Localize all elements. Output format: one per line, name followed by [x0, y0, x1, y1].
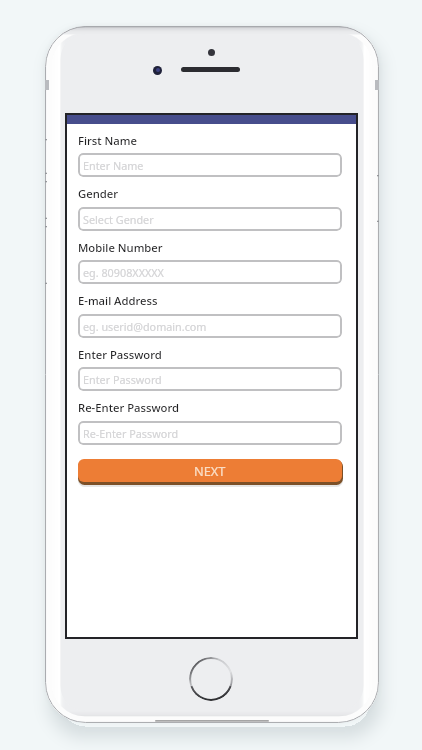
- button[interactable]: eg. 80908XXXXX: [78, 260, 342, 284]
- staticText: E-mail Address: [78, 293, 158, 308]
- staticText: Select Gender: [83, 212, 154, 227]
- staticText: Enter Password: [78, 347, 162, 362]
- button[interactable]: Enter Password: [78, 367, 342, 391]
- button[interactable]: Select Gender: [78, 207, 342, 231]
- staticText: Gender: [78, 186, 119, 201]
- staticText: Re-Enter Password: [78, 400, 180, 415]
- staticText: NEXT: [194, 462, 226, 479]
- staticText: Mobile Number: [78, 240, 163, 255]
- button[interactable]: Re-Enter Password: [78, 421, 342, 445]
- staticText: Enter Password: [83, 372, 162, 387]
- staticText: eg. userid@domain.com: [83, 319, 207, 334]
- button[interactable]: Home: [189, 657, 233, 701]
- button[interactable]: eg. userid@domain.com: [78, 314, 342, 338]
- staticText: First Name: [78, 133, 137, 148]
- staticText: Re-Enter Password: [83, 426, 179, 441]
- button[interactable]: NEXT: [78, 459, 342, 482]
- staticText: eg. 80908XXXXX: [83, 265, 164, 280]
- staticText: Enter Name: [83, 158, 144, 173]
- button[interactable]: Enter Name: [78, 153, 342, 177]
